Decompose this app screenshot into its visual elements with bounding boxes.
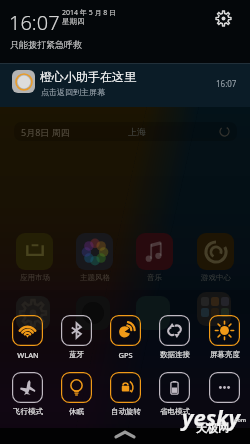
staticText: 休眠 [69, 407, 84, 416]
staticText: yesky [182, 402, 241, 432]
button[interactable]: 5月8日 周四 [14, 122, 237, 141]
button[interactable]: 飞行模式 [4, 372, 51, 416]
button[interactable]: More [201, 372, 248, 407]
button[interactable]: 休眠 [53, 372, 100, 416]
button[interactable]: 省电模式 [151, 372, 198, 416]
staticText: 天极网 [196, 421, 229, 435]
staticText: 橙心小助手在这里 [40, 69, 136, 84]
staticText: 主题风格 [80, 273, 110, 282]
button[interactable]: 应用市场 [16, 233, 53, 282]
button[interactable]: 蓝牙 [53, 315, 100, 359]
button[interactable]: 屏幕亮度 [201, 315, 248, 359]
staticText: 游戏中心 [201, 273, 231, 282]
staticText: 2014 年 5 月 8 日 [62, 8, 117, 18]
staticText: GPS [118, 350, 133, 360]
staticText: 蓝牙 [69, 350, 84, 359]
button[interactable]: GPS [102, 315, 149, 360]
staticText: 飞行模式 [13, 407, 43, 416]
staticText: 自动旋转 [111, 407, 141, 416]
staticText: 音乐 [147, 273, 162, 282]
button[interactable]: 自动旋转 [102, 372, 149, 416]
staticText: 点击返回到主屏幕 [41, 87, 105, 97]
staticText: 16:07 [216, 78, 237, 89]
button[interactable]: 数据连接 [151, 315, 198, 359]
staticText: 上海 [128, 126, 146, 137]
staticText: 5月8日 周四 [21, 126, 70, 138]
button[interactable]: 音乐 [136, 233, 173, 282]
button[interactable]: WLAN [4, 315, 51, 360]
button[interactable]: Settings [212, 7, 234, 29]
staticText: 省电模式 [160, 407, 190, 416]
staticText: .com [233, 416, 247, 423]
staticText: 应用市场 [20, 273, 50, 282]
staticText: 屏幕亮度 [210, 350, 240, 359]
staticText: 数据连接 [160, 350, 190, 359]
staticText: 星期四 [62, 17, 85, 26]
staticText: 16:07 [9, 9, 60, 36]
button[interactable]: 主题风格 [76, 233, 113, 282]
button[interactable]: 游戏中心 [197, 233, 234, 282]
staticText: 只能拨打紧急呼救 [10, 39, 82, 50]
button[interactable]: 橙心小助手在这里 [0, 64, 250, 107]
staticText: WLAN [17, 350, 39, 360]
